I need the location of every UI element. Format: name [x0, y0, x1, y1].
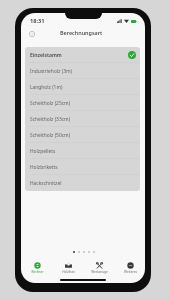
button[interactable]: Holzbriketts — [25, 159, 140, 175]
staticText: Einzelstamm — [30, 52, 62, 59]
button[interactable]: Holzpellets — [25, 143, 140, 159]
staticText: Langholz (1m) — [30, 84, 63, 91]
staticText: Weiteres — [124, 270, 137, 274]
staticText: Werkzeuge — [91, 270, 108, 274]
button[interactable]: Scheitholz (33cm) — [25, 111, 140, 127]
button[interactable]: Rechner — [22, 261, 53, 281]
staticText: Holzpellets — [30, 148, 56, 155]
button[interactable]: Help — [26, 28, 38, 40]
staticText: Rechner — [31, 270, 44, 274]
staticText: Scheitholz (50cm) — [30, 132, 71, 139]
staticText: Industrieholz (3m) — [30, 68, 72, 75]
button[interactable]: Scheitholz (50cm) — [25, 127, 140, 143]
button[interactable]: Scheitholz (25cm) — [25, 95, 140, 111]
staticText: Scheitholz (33cm) — [30, 116, 71, 123]
staticText: Holzbriketts — [30, 164, 58, 171]
staticText: Hackschnitzel — [30, 180, 62, 187]
button[interactable]: Industrieholz (3m) — [25, 63, 140, 79]
button[interactable]: Einzelstamm — [25, 47, 140, 63]
staticText: Scheitholz (25cm) — [30, 100, 71, 107]
button[interactable]: Langholz (1m) — [25, 79, 140, 95]
button[interactable]: Holzliste — [53, 261, 84, 281]
button[interactable]: Weiteres — [115, 261, 145, 281]
staticText: Berechnungsart — [60, 29, 103, 36]
button[interactable]: Werkzeuge — [84, 261, 115, 281]
staticText: 18:31 — [30, 17, 45, 25]
button[interactable]: Hackschnitzel — [25, 175, 140, 191]
staticText: Holzliste — [62, 270, 75, 274]
